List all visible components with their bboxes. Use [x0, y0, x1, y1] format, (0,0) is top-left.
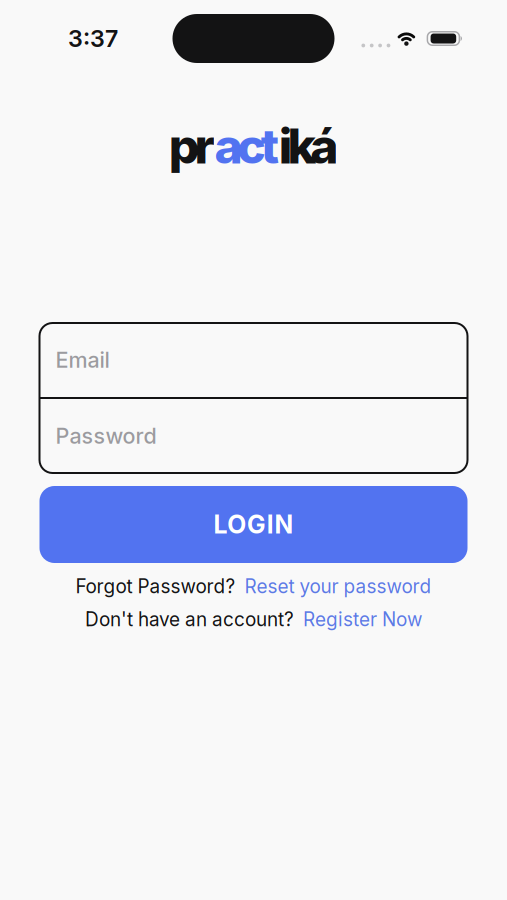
- staticText: LOGIN: [213, 509, 294, 539]
- staticText: Password: [55, 423, 156, 449]
- staticText: 3:37: [68, 24, 118, 53]
- staticText: pr: [169, 117, 214, 175]
- staticText: Register Now: [303, 608, 422, 631]
- staticText: Forgot Password?: [75, 575, 235, 598]
- staticText: Email: [55, 347, 109, 373]
- button[interactable]: Register Now: [303, 608, 422, 631]
- staticText: Reset your password: [244, 575, 431, 598]
- button[interactable]: Password: [39, 399, 467, 473]
- button[interactable]: Reset your password: [244, 575, 431, 598]
- staticText: iká: [279, 117, 338, 175]
- button[interactable]: Email: [39, 323, 467, 397]
- staticText: act: [214, 117, 279, 175]
- staticText: Don't have an account?: [85, 608, 294, 631]
- button[interactable]: LOGIN: [39, 486, 467, 563]
